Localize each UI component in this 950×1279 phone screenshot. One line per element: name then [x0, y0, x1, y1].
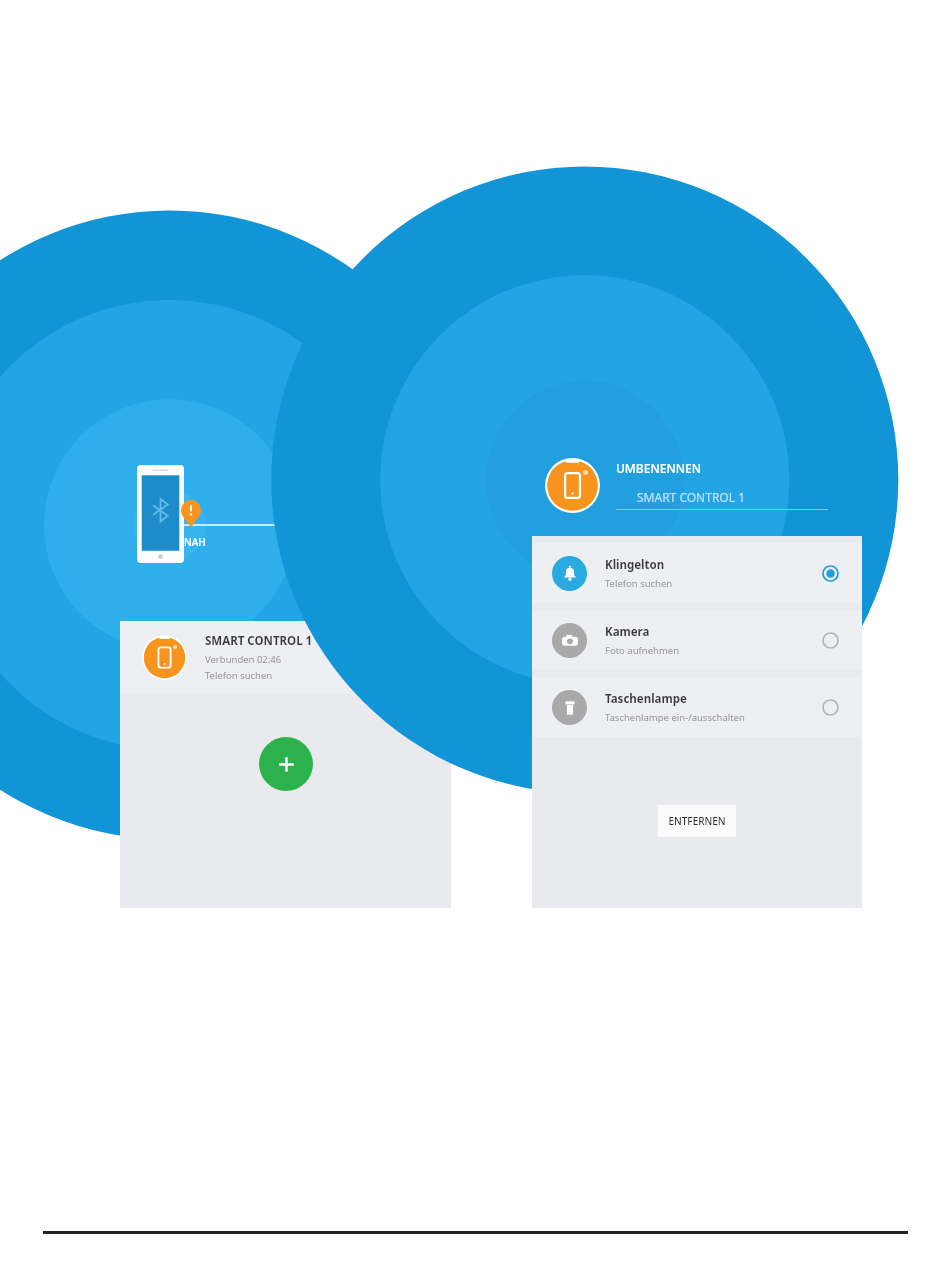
button[interactable]: ENTFERNEN [658, 805, 736, 837]
staticText: NAH [184, 535, 206, 549]
staticText: Kamera [605, 624, 650, 640]
button[interactable]: SMART CONTROL 1 [120, 621, 451, 693]
button[interactable]: Klingelton selected [812, 555, 848, 591]
staticText: Smart Control [150, 393, 251, 413]
button[interactable]: Select Taschenlampe [812, 689, 848, 725]
button[interactable]: Kamera [532, 610, 862, 670]
button[interactable]: Select Kamera [812, 622, 848, 658]
button[interactable]: SMART CONTROL 1 [616, 489, 828, 510]
staticText: SMART CONTROL 1 [205, 633, 313, 649]
staticText: Verbunden 02:46 [205, 653, 282, 666]
staticText: Foto aufnehmen [605, 644, 680, 657]
staticText: Klingelton [605, 557, 665, 573]
staticText: Taschenlampe [605, 691, 687, 707]
staticText: Telefon suchen [605, 577, 673, 590]
staticText: ENTFERNEN [668, 814, 726, 828]
button[interactable]: Taschenlampe [532, 677, 862, 737]
button[interactable]: Klingelton [532, 543, 862, 603]
staticText: SMART CONTROL 1 [637, 489, 746, 505]
staticText: Telefon suchen [205, 669, 273, 682]
staticText: UMBENENNEN [616, 460, 702, 476]
button[interactable]: Add device [259, 737, 313, 791]
staticText: Taschenlampe ein-/ausschalten [605, 711, 745, 724]
